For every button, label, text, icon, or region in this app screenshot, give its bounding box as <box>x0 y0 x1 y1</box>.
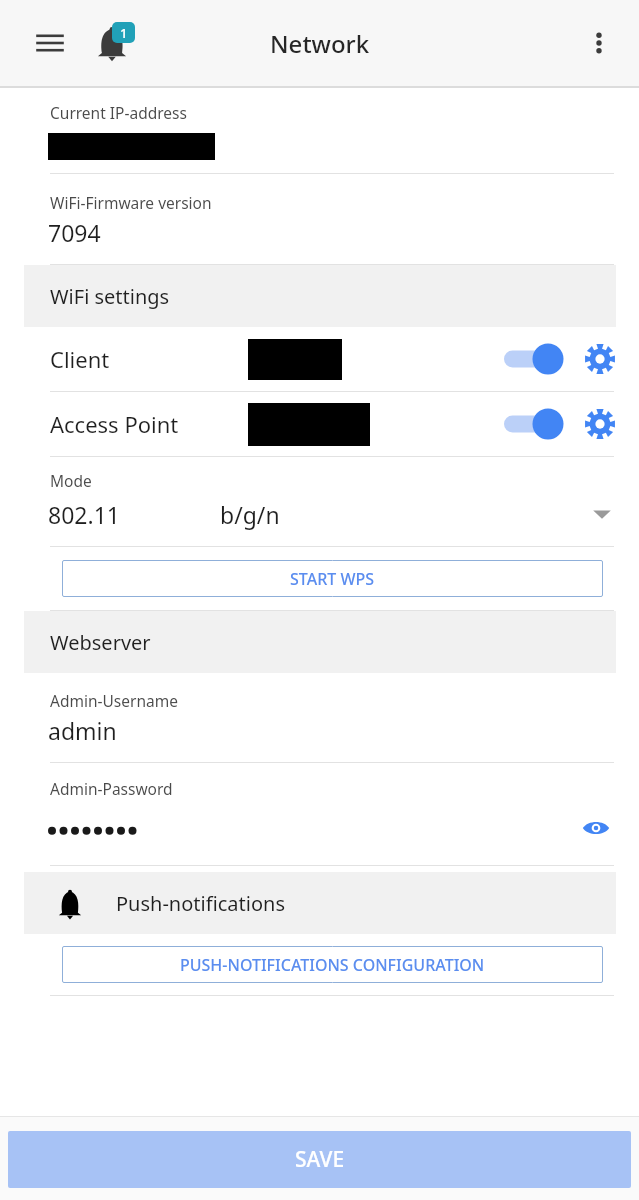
staticText: 7094 <box>48 217 101 248</box>
staticText: Push-notifications <box>116 890 285 917</box>
button[interactable]: Access Point <box>0 392 639 456</box>
staticText: Access Point <box>50 409 179 439</box>
staticText: Admin-Password <box>50 778 173 799</box>
staticText: Current IP-address <box>50 102 187 123</box>
button[interactable]: Push-notifications <box>24 872 616 934</box>
button[interactable]: PUSH-NOTIFICATIONS CONFIGURATION <box>62 946 603 983</box>
staticText: WiFi-Firmware version <box>50 192 212 213</box>
staticText: Webserver <box>50 629 151 656</box>
button[interactable]: Access Point toggle <box>495 401 569 447</box>
staticText: 1 <box>120 24 128 42</box>
staticText: 802.11 <box>48 499 120 530</box>
staticText: b/g/n <box>220 499 280 530</box>
staticText: Client <box>50 344 110 374</box>
button[interactable]: 802.11 <box>0 495 639 533</box>
button[interactable]: SAVE <box>8 1131 631 1188</box>
staticText: WiFi settings <box>50 283 170 310</box>
staticText: admin <box>48 715 117 746</box>
staticText: Mode <box>50 470 92 491</box>
staticText: Admin-Username <box>50 690 178 711</box>
button[interactable]: More options <box>575 19 623 67</box>
button[interactable]: Notifications <box>84 15 140 71</box>
staticText: SAVE <box>295 1145 345 1174</box>
button[interactable]: Client toggle <box>495 336 569 382</box>
staticText: START WPS <box>290 568 375 590</box>
button[interactable]: Client <box>0 327 639 391</box>
button[interactable]: Access Point settings <box>575 399 625 449</box>
button[interactable]: Show password <box>573 805 619 851</box>
button[interactable]: START WPS <box>62 560 603 597</box>
button[interactable]: Client settings <box>575 334 625 384</box>
staticText: PUSH-NOTIFICATIONS CONFIGURATION <box>180 954 485 976</box>
staticText: Network <box>270 27 370 60</box>
button[interactable]: Menu <box>24 17 76 69</box>
